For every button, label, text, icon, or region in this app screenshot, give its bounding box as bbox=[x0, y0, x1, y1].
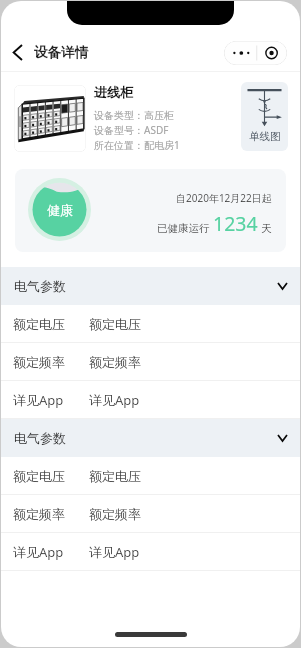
staticText: 额定频率 bbox=[13, 506, 65, 522]
staticText: 自2020年12月22日起 bbox=[176, 191, 272, 205]
staticText: 1234 bbox=[213, 210, 258, 237]
staticText: 设备型号：ASDF bbox=[94, 123, 169, 137]
staticText: 进线柜 bbox=[94, 84, 133, 100]
button[interactable]: 单线图 bbox=[241, 82, 288, 151]
staticText: 已健康运行 bbox=[157, 222, 210, 235]
staticText: 额定频率 bbox=[89, 354, 141, 370]
staticText: 电气参数 bbox=[14, 430, 66, 446]
button[interactable]: 额定频率 bbox=[1, 495, 300, 532]
button[interactable]: 详见App bbox=[1, 381, 300, 418]
button[interactable]: 电气参数 bbox=[1, 419, 300, 457]
staticText: 单线图 bbox=[249, 130, 281, 143]
button[interactable]: More options bbox=[224, 41, 287, 65]
button[interactable]: 额定频率 bbox=[1, 343, 300, 380]
staticText: 详见App bbox=[13, 543, 64, 561]
button[interactable]: 详见App bbox=[1, 533, 300, 570]
staticText: 额定频率 bbox=[89, 506, 141, 522]
staticText: 天 bbox=[261, 222, 272, 235]
button[interactable]: 额定电压 bbox=[1, 457, 300, 494]
staticText: 详见App bbox=[13, 391, 64, 409]
button[interactable]: 额定电压 bbox=[1, 305, 300, 342]
staticText: 所在位置：配电房1 bbox=[94, 138, 180, 152]
staticText: 健康 bbox=[47, 202, 73, 218]
staticText: 额定电压 bbox=[13, 316, 65, 332]
staticText: 额定电压 bbox=[89, 316, 141, 332]
staticText: 详见App bbox=[89, 391, 140, 409]
button[interactable]: 电气参数 bbox=[1, 267, 300, 305]
staticText: 详见App bbox=[89, 543, 140, 561]
staticText: 额定电压 bbox=[89, 468, 141, 484]
button[interactable]: Back bbox=[1, 34, 34, 71]
staticText: 额定频率 bbox=[13, 354, 65, 370]
staticText: 电气参数 bbox=[14, 278, 66, 294]
staticText: 设备类型：高压柜 bbox=[94, 109, 174, 122]
staticText: 设备详情 bbox=[34, 44, 88, 61]
staticText: 额定电压 bbox=[13, 468, 65, 484]
